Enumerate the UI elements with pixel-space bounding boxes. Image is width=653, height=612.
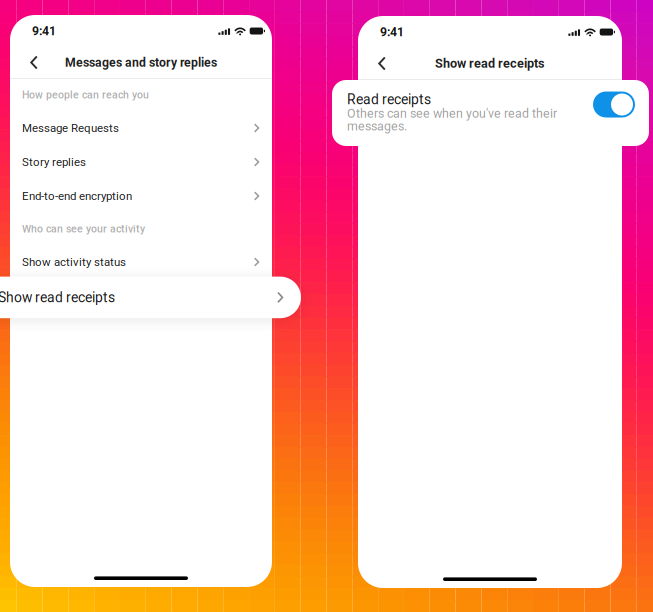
button[interactable]: End-to-end encryption [10,179,272,213]
staticText: 9:41 [380,25,404,39]
staticText: How people can reach you [22,89,149,101]
button[interactable]: Message Requests [10,111,272,145]
button[interactable]: Read receipts [593,91,635,117]
staticText: 9:41 [32,24,56,38]
staticText: Who can see your activity [22,223,145,235]
staticText: messages. [347,119,407,134]
button[interactable]: Show read receipts [0,277,301,318]
staticText: Others can see when you've read their [347,106,557,121]
button[interactable]: Show activity status [10,245,272,279]
staticText: Show activity status [22,255,126,269]
staticText: Show read receipts [0,289,115,306]
staticText: Story replies [22,155,86,169]
staticText: Read receipts [347,91,431,108]
button[interactable]: Back [19,45,49,79]
button[interactable]: Story replies [10,145,272,179]
staticText: End-to-end encryption [22,189,132,203]
staticText: Message Requests [22,121,119,135]
staticText: Show read receipts [435,56,545,71]
staticText: Messages and story replies [65,55,217,70]
button[interactable]: Back [367,46,397,80]
